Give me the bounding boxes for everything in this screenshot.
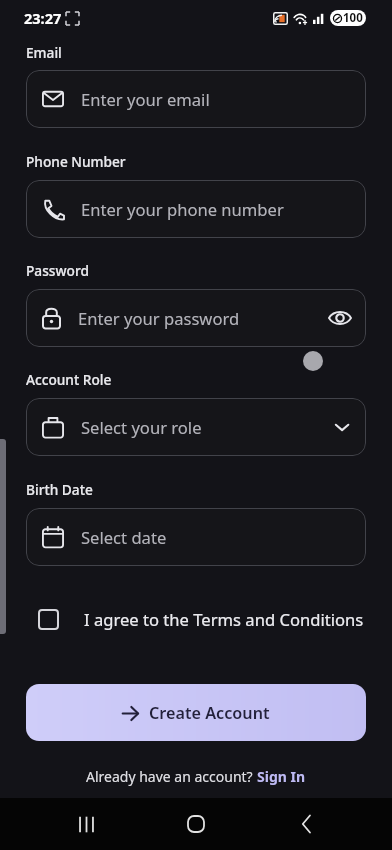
- button[interactable]: Sign In: [257, 767, 306, 786]
- staticText: I agree to the Terms and Conditions: [84, 608, 364, 631]
- button[interactable]: Select your role: [26, 398, 366, 456]
- staticText: Sign In: [257, 767, 306, 786]
- staticText: Create Account: [149, 702, 270, 724]
- button[interactable]: Enter your password: [26, 289, 366, 347]
- staticText: Email: [26, 43, 62, 62]
- staticText: Select date: [81, 526, 167, 549]
- staticText: 23:27: [24, 8, 62, 28]
- button[interactable]: Recent apps: [62, 800, 110, 848]
- button[interactable]: Enter your phone number: [26, 180, 366, 238]
- staticText: 100: [343, 10, 363, 26]
- staticText: Select your role: [81, 416, 202, 439]
- staticText: Birth Date: [26, 480, 93, 499]
- button[interactable]: Back: [282, 800, 330, 848]
- staticText: Enter your email: [81, 88, 210, 111]
- staticText: Already have an account?: [86, 767, 257, 786]
- button[interactable]: Select date: [26, 508, 366, 566]
- button[interactable]: Home: [172, 800, 220, 848]
- staticText: Enter your password: [78, 307, 240, 330]
- button[interactable]: Enter your email: [26, 70, 366, 128]
- button[interactable]: Create Account: [26, 684, 366, 741]
- staticText: Password: [26, 261, 89, 280]
- staticText: Enter your phone number: [81, 198, 284, 221]
- button[interactable]: Show password: [324, 302, 356, 334]
- button[interactable]: I agree to the Terms and Conditions: [26, 600, 366, 638]
- staticText: Phone Number: [26, 152, 126, 171]
- staticText: Account Role: [26, 370, 112, 389]
